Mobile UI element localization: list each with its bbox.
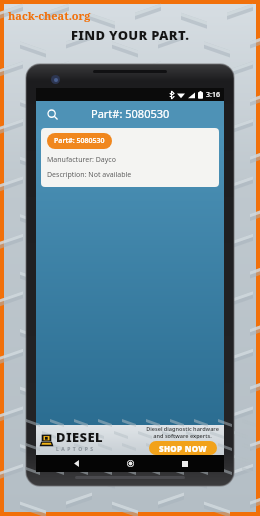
- staticText: and software experts.: [153, 432, 212, 439]
- staticText: Diesel diagnostic hardware: [146, 425, 219, 432]
- staticText: hack-cheat.org: [8, 8, 91, 23]
- button[interactable]: Recent apps: [170, 455, 200, 472]
- button[interactable]: DIESEL: [36, 425, 224, 455]
- button[interactable]: Home: [115, 455, 145, 472]
- staticText: Manufacturer: Dayco: [47, 155, 116, 165]
- button[interactable]: Part#: 5080530: [41, 128, 219, 187]
- staticText: FIND YOUR PART.: [71, 26, 190, 44]
- staticText: DIESEL: [56, 428, 104, 446]
- staticText: Description: Not available: [47, 170, 132, 180]
- button[interactable]: SHOP NOW: [149, 441, 217, 455]
- button[interactable]: Search: [43, 105, 61, 123]
- staticText: L A P T O P S: [56, 446, 94, 453]
- staticText: 3:16: [206, 90, 220, 100]
- staticText: Part#: 5080530: [54, 136, 105, 146]
- button[interactable]: Back: [61, 455, 91, 472]
- staticText: Part#: 5080530: [91, 106, 170, 121]
- staticText: SHOP NOW: [159, 443, 207, 453]
